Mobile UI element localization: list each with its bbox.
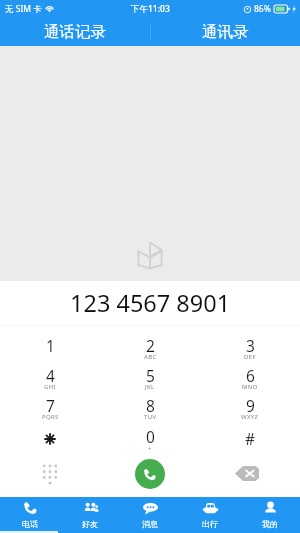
button[interactable]: 6 (200, 360, 300, 390)
staticText: 下午11:03 (131, 3, 170, 15)
button[interactable]: 2 (100, 330, 200, 360)
button[interactable]: 5 (100, 360, 200, 390)
staticText: WXYZ (241, 413, 259, 421)
button[interactable]: 通讯录 (150, 18, 300, 46)
staticText: 7 (46, 395, 55, 416)
staticText: 5 (146, 365, 155, 386)
button[interactable]: 好友 (60, 497, 120, 533)
button[interactable]: 3 (200, 330, 300, 360)
staticText: 1 (46, 335, 55, 356)
button[interactable]: 7 (0, 390, 100, 420)
button[interactable]: 我的 (240, 497, 300, 533)
staticText: 通话记录 (44, 22, 106, 42)
button[interactable] (0, 420, 100, 450)
button[interactable]: 1 (0, 330, 100, 360)
button[interactable]: 4 (0, 360, 100, 390)
staticText: MNO (242, 383, 258, 391)
staticText: TUV (144, 413, 157, 421)
staticText: + (148, 445, 152, 453)
staticText: 无 SIM 卡 (5, 3, 42, 15)
staticText: 好友 (82, 519, 98, 529)
staticText: 4 (46, 365, 55, 386)
staticText: 86% (254, 3, 271, 15)
staticText: 出行 (202, 519, 218, 529)
staticText: 消息 (142, 519, 158, 529)
button[interactable]: 9 (200, 390, 300, 420)
button[interactable]: 电话 (0, 497, 60, 533)
staticText: 通讯录 (202, 22, 249, 42)
button[interactable]: 通话记录 (0, 18, 150, 46)
staticText: 电话 (22, 519, 38, 529)
button[interactable]: 消息 (120, 497, 180, 533)
button[interactable]: 0 (100, 420, 200, 450)
staticText: 0 (146, 426, 155, 447)
button[interactable]: 8 (100, 390, 200, 420)
staticText: DEF (244, 353, 256, 361)
staticText: GHI (44, 383, 56, 391)
staticText: 6 (246, 365, 255, 386)
staticText: JKL (145, 383, 155, 391)
button[interactable]: Show keypad (0, 450, 100, 497)
button[interactable]: 出行 (180, 497, 240, 533)
staticText: PQRS (42, 413, 59, 421)
staticText: 3 (246, 335, 255, 356)
staticText: 2 (146, 335, 155, 356)
staticText: # (245, 428, 256, 449)
staticText: 123 4567 8901 (70, 287, 231, 319)
button[interactable]: # (200, 420, 300, 450)
button[interactable]: Call (135, 459, 165, 489)
staticText: ABC (144, 353, 157, 361)
button[interactable]: Backspace (200, 450, 300, 497)
staticText: 9 (246, 395, 255, 416)
staticText: 8 (146, 395, 155, 416)
staticText: 我的 (262, 519, 278, 529)
